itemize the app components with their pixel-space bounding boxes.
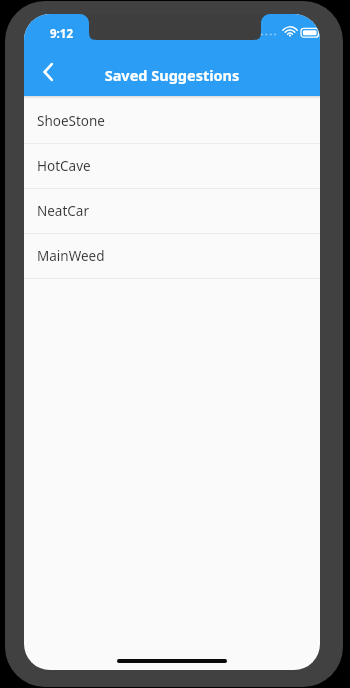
staticText: NeatCar	[37, 202, 90, 220]
button[interactable]: MainWeed	[24, 234, 320, 278]
button[interactable]: NeatCar	[24, 189, 320, 233]
button[interactable]: HotCave	[24, 144, 320, 188]
staticText: ShoeStone	[37, 112, 105, 130]
staticText: Saved Suggestions	[24, 65, 320, 85]
staticText: HotCave	[37, 157, 91, 175]
staticText: 9:12	[50, 26, 73, 42]
button[interactable]: Back	[34, 58, 62, 86]
staticText: MainWeed	[37, 247, 105, 265]
button[interactable]: ShoeStone	[24, 99, 320, 143]
